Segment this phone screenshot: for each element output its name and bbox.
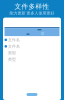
- staticText: 能力更新 更多人使用更好: [9, 11, 54, 16]
- staticText: 文件名: [8, 37, 20, 42]
- button[interactable]: Home indicator: [26, 93, 37, 96]
- staticText: 类型: [8, 50, 16, 55]
- staticText: 文件多样性: [14, 2, 49, 11]
- staticText: 类型: [8, 57, 16, 62]
- staticText: 文件名: [8, 44, 20, 49]
